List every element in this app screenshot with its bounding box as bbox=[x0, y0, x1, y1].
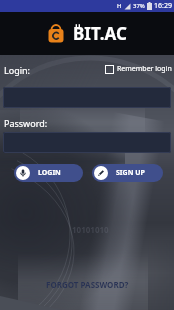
staticText: 16:29 bbox=[154, 1, 172, 11]
staticText: LOGIN bbox=[38, 168, 61, 178]
button[interactable] bbox=[3, 132, 171, 153]
button[interactable]: LOGIN bbox=[14, 164, 83, 182]
button[interactable] bbox=[3, 87, 171, 108]
staticText: Login: bbox=[4, 64, 30, 76]
button[interactable]: Remember login bbox=[105, 64, 172, 74]
staticText: Password: bbox=[4, 117, 48, 129]
staticText: H bbox=[117, 2, 122, 10]
button[interactable]: SIGN UP bbox=[92, 164, 163, 182]
staticText: Remember login bbox=[117, 64, 172, 74]
staticText: SIGN UP bbox=[116, 168, 145, 178]
button[interactable]: FORGOT PASSWORD? bbox=[46, 279, 129, 290]
staticText: 10101010 bbox=[72, 224, 109, 235]
staticText: BIT.AC bbox=[73, 22, 127, 45]
staticText: 37% bbox=[133, 2, 145, 10]
